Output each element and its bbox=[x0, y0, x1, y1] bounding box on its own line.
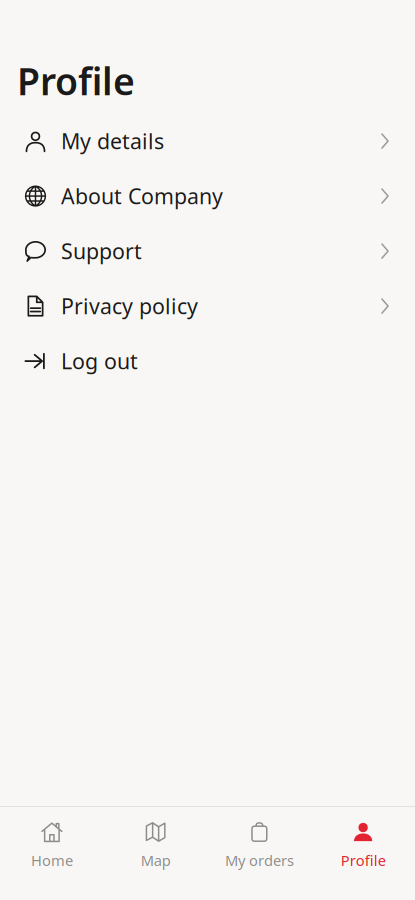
button[interactable]: Profile bbox=[311, 807, 415, 877]
staticText: Log out bbox=[61, 347, 138, 375]
staticText: Map bbox=[141, 850, 171, 870]
staticText: Privacy policy bbox=[61, 292, 198, 320]
button[interactable]: Privacy policy bbox=[0, 279, 415, 334]
staticText: Support bbox=[61, 237, 142, 265]
staticText: Profile bbox=[341, 850, 386, 870]
button[interactable]: My orders bbox=[207, 807, 311, 877]
button[interactable]: Log out bbox=[0, 334, 415, 389]
button[interactable]: About Company bbox=[0, 169, 415, 224]
button[interactable]: Map bbox=[104, 807, 208, 877]
staticText: My details bbox=[61, 127, 164, 155]
button[interactable]: Support bbox=[0, 224, 415, 279]
staticText: My orders bbox=[225, 850, 294, 870]
staticText: Home bbox=[31, 850, 73, 870]
button[interactable]: Home bbox=[0, 807, 104, 877]
staticText: Profile bbox=[17, 56, 135, 106]
button[interactable]: My details bbox=[0, 114, 415, 169]
staticText: About Company bbox=[61, 182, 223, 210]
